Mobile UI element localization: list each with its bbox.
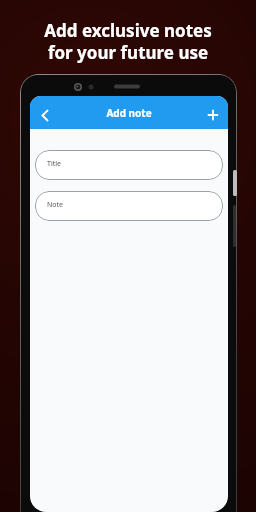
staticText: Add exclusive notes for your future use <box>0 19 256 64</box>
button[interactable]: Note <box>35 191 223 221</box>
button[interactable]: Title <box>35 150 223 180</box>
button[interactable] <box>30 96 60 129</box>
staticText: Note <box>47 200 64 210</box>
staticText: Title <box>47 159 61 169</box>
staticText: Add note <box>60 106 198 120</box>
button[interactable] <box>198 96 228 129</box>
